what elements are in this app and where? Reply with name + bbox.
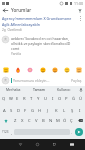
staticText: . xyxy=(71,130,73,135)
button[interactable]: Emoji xyxy=(2,66,10,74)
button[interactable]: Recents xyxy=(46,139,63,150)
button[interactable]: J xyxy=(44,106,52,115)
button[interactable]: Z xyxy=(11,115,19,126)
staticText: Y xyxy=(37,96,40,102)
staticText: Ş xyxy=(71,108,74,114)
staticText: 11:00 xyxy=(74,1,83,6)
staticText: J xyxy=(47,108,49,114)
staticText: B xyxy=(42,118,45,124)
button[interactable]: X xyxy=(19,115,26,126)
staticText: Paylaş xyxy=(71,78,82,83)
staticText: D xyxy=(17,108,21,114)
button[interactable]: E xyxy=(14,93,21,104)
staticText: Tamam xyxy=(33,87,45,92)
button[interactable]: Backspace xyxy=(75,115,85,126)
staticText: F xyxy=(24,108,27,114)
staticText: L xyxy=(63,108,66,114)
staticText: ollstikk-ve paylagin sbectSonaltooID xyxy=(11,41,71,46)
button[interactable]: Emoji xyxy=(75,66,83,74)
button[interactable]: M xyxy=(54,115,61,126)
button[interactable]: Emoji xyxy=(26,66,34,74)
button[interactable]: Filter xyxy=(76,7,83,14)
button[interactable]: Emoji xyxy=(39,66,47,74)
button[interactable]: P xyxy=(63,93,70,104)
staticText: Yorumunuzu ekleyin... xyxy=(13,78,50,83)
button[interactable]: Period xyxy=(70,126,74,138)
button[interactable]: ?123 xyxy=(1,126,10,138)
button[interactable]: W xyxy=(7,93,14,104)
button[interactable]: Switch keyboard xyxy=(63,139,80,150)
staticText: aebbrec'Sovabrod en cot hazardan, xyxy=(11,36,69,41)
button[interactable]: Ü xyxy=(77,93,84,104)
staticText: X xyxy=(21,118,24,124)
button[interactable]: Send xyxy=(75,128,83,136)
button[interactable]: Voice input xyxy=(76,86,85,93)
button[interactable]: Paylaş xyxy=(70,77,83,84)
staticText: R xyxy=(23,96,26,102)
staticText: Yanitla xyxy=(11,52,21,56)
staticText: Kullanıcı xyxy=(57,87,71,92)
button[interactable]: R xyxy=(21,93,28,104)
button[interactable]: C xyxy=(26,115,33,126)
staticText: G xyxy=(31,108,35,114)
button[interactable]: Home xyxy=(29,139,46,150)
staticText: V xyxy=(35,118,38,124)
button[interactable]: Ğ xyxy=(70,93,77,104)
staticText: M xyxy=(56,118,60,124)
staticText: O xyxy=(58,96,62,102)
button[interactable]: B xyxy=(40,115,47,126)
button[interactable]: Merhaba xyxy=(0,86,26,93)
button[interactable]: Back xyxy=(2,7,9,14)
staticText: H xyxy=(38,108,42,114)
button[interactable]: A xyxy=(1,106,8,115)
button[interactable]: Comma xyxy=(10,126,14,138)
staticText: 2g Ozetlendi xyxy=(2,28,22,32)
button[interactable]: G xyxy=(29,106,36,115)
staticText: , xyxy=(11,130,13,135)
button[interactable]: F xyxy=(22,106,29,115)
staticText: Ğ xyxy=(72,96,76,102)
staticText: ?123 xyxy=(2,130,9,134)
staticText: W xyxy=(9,96,13,102)
staticText: U xyxy=(44,96,48,102)
button[interactable]: O xyxy=(56,93,63,104)
button[interactable]: N xyxy=(47,115,54,126)
staticText: S xyxy=(10,108,13,114)
button[interactable]: Yorumunuzu ekleyin... xyxy=(11,78,69,83)
button[interactable]: More options xyxy=(78,16,83,21)
button[interactable]: S xyxy=(8,106,15,115)
staticText: I xyxy=(79,108,81,114)
staticText: N xyxy=(49,118,53,124)
button[interactable]: Y xyxy=(35,93,42,104)
button[interactable]: Q xyxy=(1,93,7,104)
staticText: Ç xyxy=(70,118,73,124)
staticText: I xyxy=(52,96,54,102)
button[interactable]: Back xyxy=(11,139,29,150)
button[interactable]: L xyxy=(60,106,68,115)
staticText: Z xyxy=(14,118,17,124)
staticText: P xyxy=(65,96,68,102)
button[interactable]: H xyxy=(36,106,44,115)
staticText: C xyxy=(28,118,31,124)
button[interactable]: Ö xyxy=(61,115,68,126)
button[interactable]: Emoji xyxy=(63,66,71,74)
button[interactable]: Shift xyxy=(0,115,11,126)
button[interactable]: Ş xyxy=(68,106,76,115)
button[interactable]: I xyxy=(76,106,84,115)
button[interactable]: I xyxy=(49,93,56,104)
button[interactable]: U xyxy=(42,93,49,104)
button[interactable]: Tamam xyxy=(26,86,51,93)
button[interactable]: V xyxy=(33,115,40,126)
button[interactable]: D xyxy=(15,106,22,115)
button[interactable]: T xyxy=(28,93,35,104)
button[interactable]: K xyxy=(52,106,60,115)
button[interactable]: Kullanıcı xyxy=(51,86,76,93)
button[interactable]: Emoji xyxy=(14,66,22,74)
staticText: E xyxy=(16,96,19,102)
staticText: Yorumlar xyxy=(11,7,32,13)
button[interactable]: aebbrec'Sovabrod en cot hazardan, xyxy=(2,36,83,56)
staticText: A xyxy=(3,108,6,114)
button[interactable]: Emoji xyxy=(51,66,59,74)
button[interactable]: Ç xyxy=(68,115,75,126)
